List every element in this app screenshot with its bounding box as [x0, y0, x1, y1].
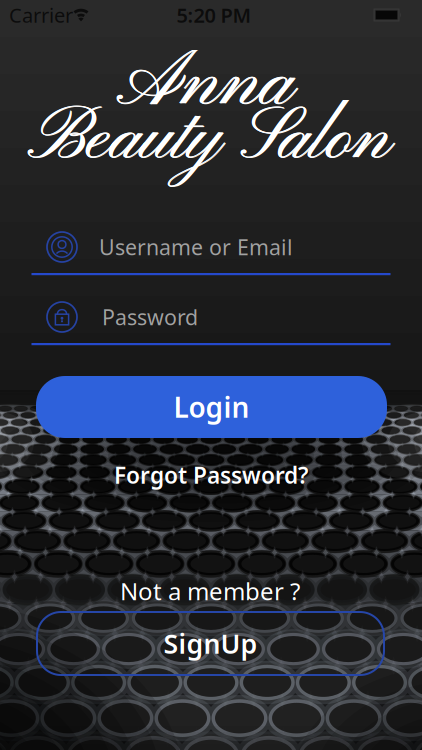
- staticText: Beauty Salon: [27, 94, 389, 186]
- staticText: Anna: [117, 36, 293, 134]
- staticText: Anna: [117, 36, 293, 134]
- staticText: Username or Email: [99, 233, 293, 261]
- button[interactable]: Forgot Password?: [114, 460, 308, 490]
- button[interactable]: SignUp: [37, 612, 384, 675]
- staticText: Carrier: [9, 2, 73, 28]
- staticText: 5:20 PM: [176, 2, 251, 28]
- button[interactable]: Password: [31, 301, 390, 346]
- button[interactable]: Login: [36, 376, 387, 438]
- staticText: Password: [102, 303, 198, 331]
- staticText: Beauty Salon: [28, 95, 390, 186]
- staticText: Beauty Salon: [28, 94, 390, 186]
- button[interactable]: Username or Email: [31, 231, 390, 276]
- staticText: SignUp: [163, 626, 257, 661]
- staticText: Anna: [116, 36, 292, 134]
- staticText: Login: [173, 388, 249, 426]
- staticText: Not a member ?: [120, 575, 300, 607]
- staticText: Forgot Password?: [114, 460, 308, 490]
